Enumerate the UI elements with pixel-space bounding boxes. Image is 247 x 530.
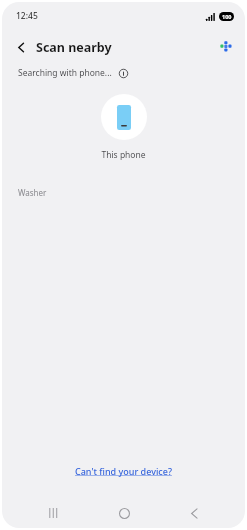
- button[interactable]: Can't find your device?: [65, 460, 182, 482]
- button[interactable]: This phone: [101, 94, 147, 140]
- staticText: Searching with phone...: [18, 67, 112, 79]
- button[interactable]: Quick share: [215, 36, 237, 58]
- staticText: Scan nearby: [36, 39, 112, 56]
- staticText: 100: [222, 13, 232, 20]
- staticText: This phone: [101, 149, 146, 161]
- button[interactable]: Back: [175, 498, 213, 528]
- button[interactable]: Home: [105, 498, 143, 528]
- staticText: Washer: [18, 187, 47, 198]
- button[interactable]: Recent apps: [34, 498, 72, 528]
- button[interactable]: Back: [10, 36, 32, 58]
- staticText: 12:45: [16, 10, 38, 22]
- button[interactable]: Information: [116, 66, 130, 80]
